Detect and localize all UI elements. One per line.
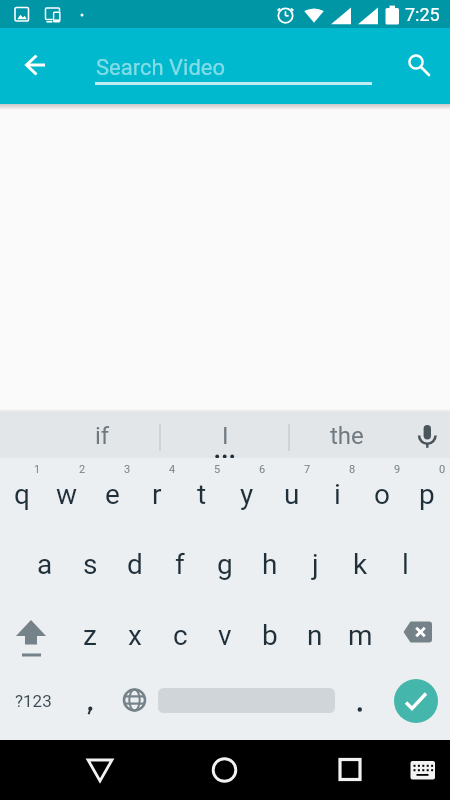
staticText: 8: [349, 463, 356, 476]
button[interactable]: [337, 677, 381, 725]
staticText: n: [307, 619, 323, 652]
button[interactable]: [8, 611, 54, 659]
button[interactable]: [16, 45, 56, 85]
button[interactable]: d: [113, 540, 157, 588]
button[interactable]: z: [68, 611, 112, 659]
button[interactable]: a: [23, 540, 67, 588]
staticText: if: [95, 422, 110, 450]
staticText: e: [105, 478, 120, 511]
staticText: 4: [169, 463, 176, 476]
staticText: x: [128, 619, 142, 652]
button[interactable]: n: [293, 611, 337, 659]
staticText: 1: [34, 463, 41, 476]
staticText: l: [402, 548, 409, 581]
staticText: s: [83, 548, 98, 581]
button[interactable]: k: [338, 540, 382, 588]
button[interactable]: s: [68, 540, 112, 588]
button[interactable]: I: [180, 412, 270, 458]
staticText: d: [127, 548, 143, 581]
button[interactable]: f: [158, 540, 202, 588]
staticText: m: [348, 619, 373, 652]
staticText: a: [37, 548, 53, 581]
button[interactable]: [200, 745, 250, 795]
staticText: u: [284, 478, 300, 511]
button[interactable]: e: [90, 470, 134, 518]
button[interactable]: v: [203, 611, 247, 659]
staticText: j: [312, 548, 319, 581]
staticText: 3: [124, 463, 131, 476]
staticText: h: [262, 548, 278, 581]
staticText: 9: [394, 463, 401, 476]
staticText: 2: [79, 463, 86, 476]
button[interactable]: o: [360, 470, 404, 518]
staticText: z: [83, 619, 97, 652]
button[interactable]: y: [225, 470, 269, 518]
button[interactable]: j: [293, 540, 337, 588]
button[interactable]: l: [383, 540, 427, 588]
staticText: k: [353, 548, 368, 581]
button[interactable]: p: [405, 470, 449, 518]
button[interactable]: r: [135, 470, 179, 518]
staticText: g: [217, 548, 233, 581]
button[interactable]: g: [203, 540, 247, 588]
staticText: 5: [214, 463, 221, 476]
button[interactable]: [112, 677, 158, 725]
button[interactable]: [398, 44, 436, 82]
button[interactable]: i: [315, 470, 359, 518]
staticText: 6: [259, 463, 266, 476]
button[interactable]: ?123: [8, 677, 59, 725]
staticText: f: [175, 548, 185, 581]
staticText: c: [173, 619, 188, 652]
staticText: 0: [439, 463, 446, 476]
button[interactable]: b: [248, 611, 292, 659]
staticText: 7: [304, 463, 311, 476]
staticText: q: [14, 478, 30, 511]
staticText: v: [218, 619, 232, 652]
button[interactable]: [394, 679, 438, 723]
staticText: r: [152, 478, 162, 511]
staticText: b: [262, 619, 278, 652]
staticText: y: [240, 478, 254, 511]
button[interactable]: the: [302, 412, 392, 458]
button[interactable]: if: [57, 412, 147, 458]
staticText: Search Video: [96, 55, 226, 81]
button[interactable]: x: [113, 611, 157, 659]
staticText: w: [56, 478, 78, 511]
staticText: i: [334, 478, 341, 511]
button[interactable]: [68, 677, 112, 725]
button[interactable]: c: [158, 611, 202, 659]
button[interactable]: [396, 611, 442, 659]
button[interactable]: t: [180, 470, 224, 518]
button[interactable]: u: [270, 470, 314, 518]
staticText: o: [374, 478, 390, 511]
staticText: I: [222, 422, 229, 450]
button[interactable]: [400, 745, 445, 790]
button[interactable]: m: [338, 611, 382, 659]
staticText: the: [330, 422, 364, 450]
button[interactable]: Search Video: [95, 50, 373, 86]
button[interactable]: w: [45, 470, 89, 518]
button[interactable]: h: [248, 540, 292, 588]
staticText: 7:25: [405, 4, 440, 25]
staticText: p: [419, 478, 435, 511]
staticText: t: [197, 478, 207, 511]
staticText: ?123: [15, 691, 52, 711]
button[interactable]: q: [0, 470, 44, 518]
button[interactable]: [325, 745, 375, 795]
button[interactable]: [75, 745, 125, 795]
